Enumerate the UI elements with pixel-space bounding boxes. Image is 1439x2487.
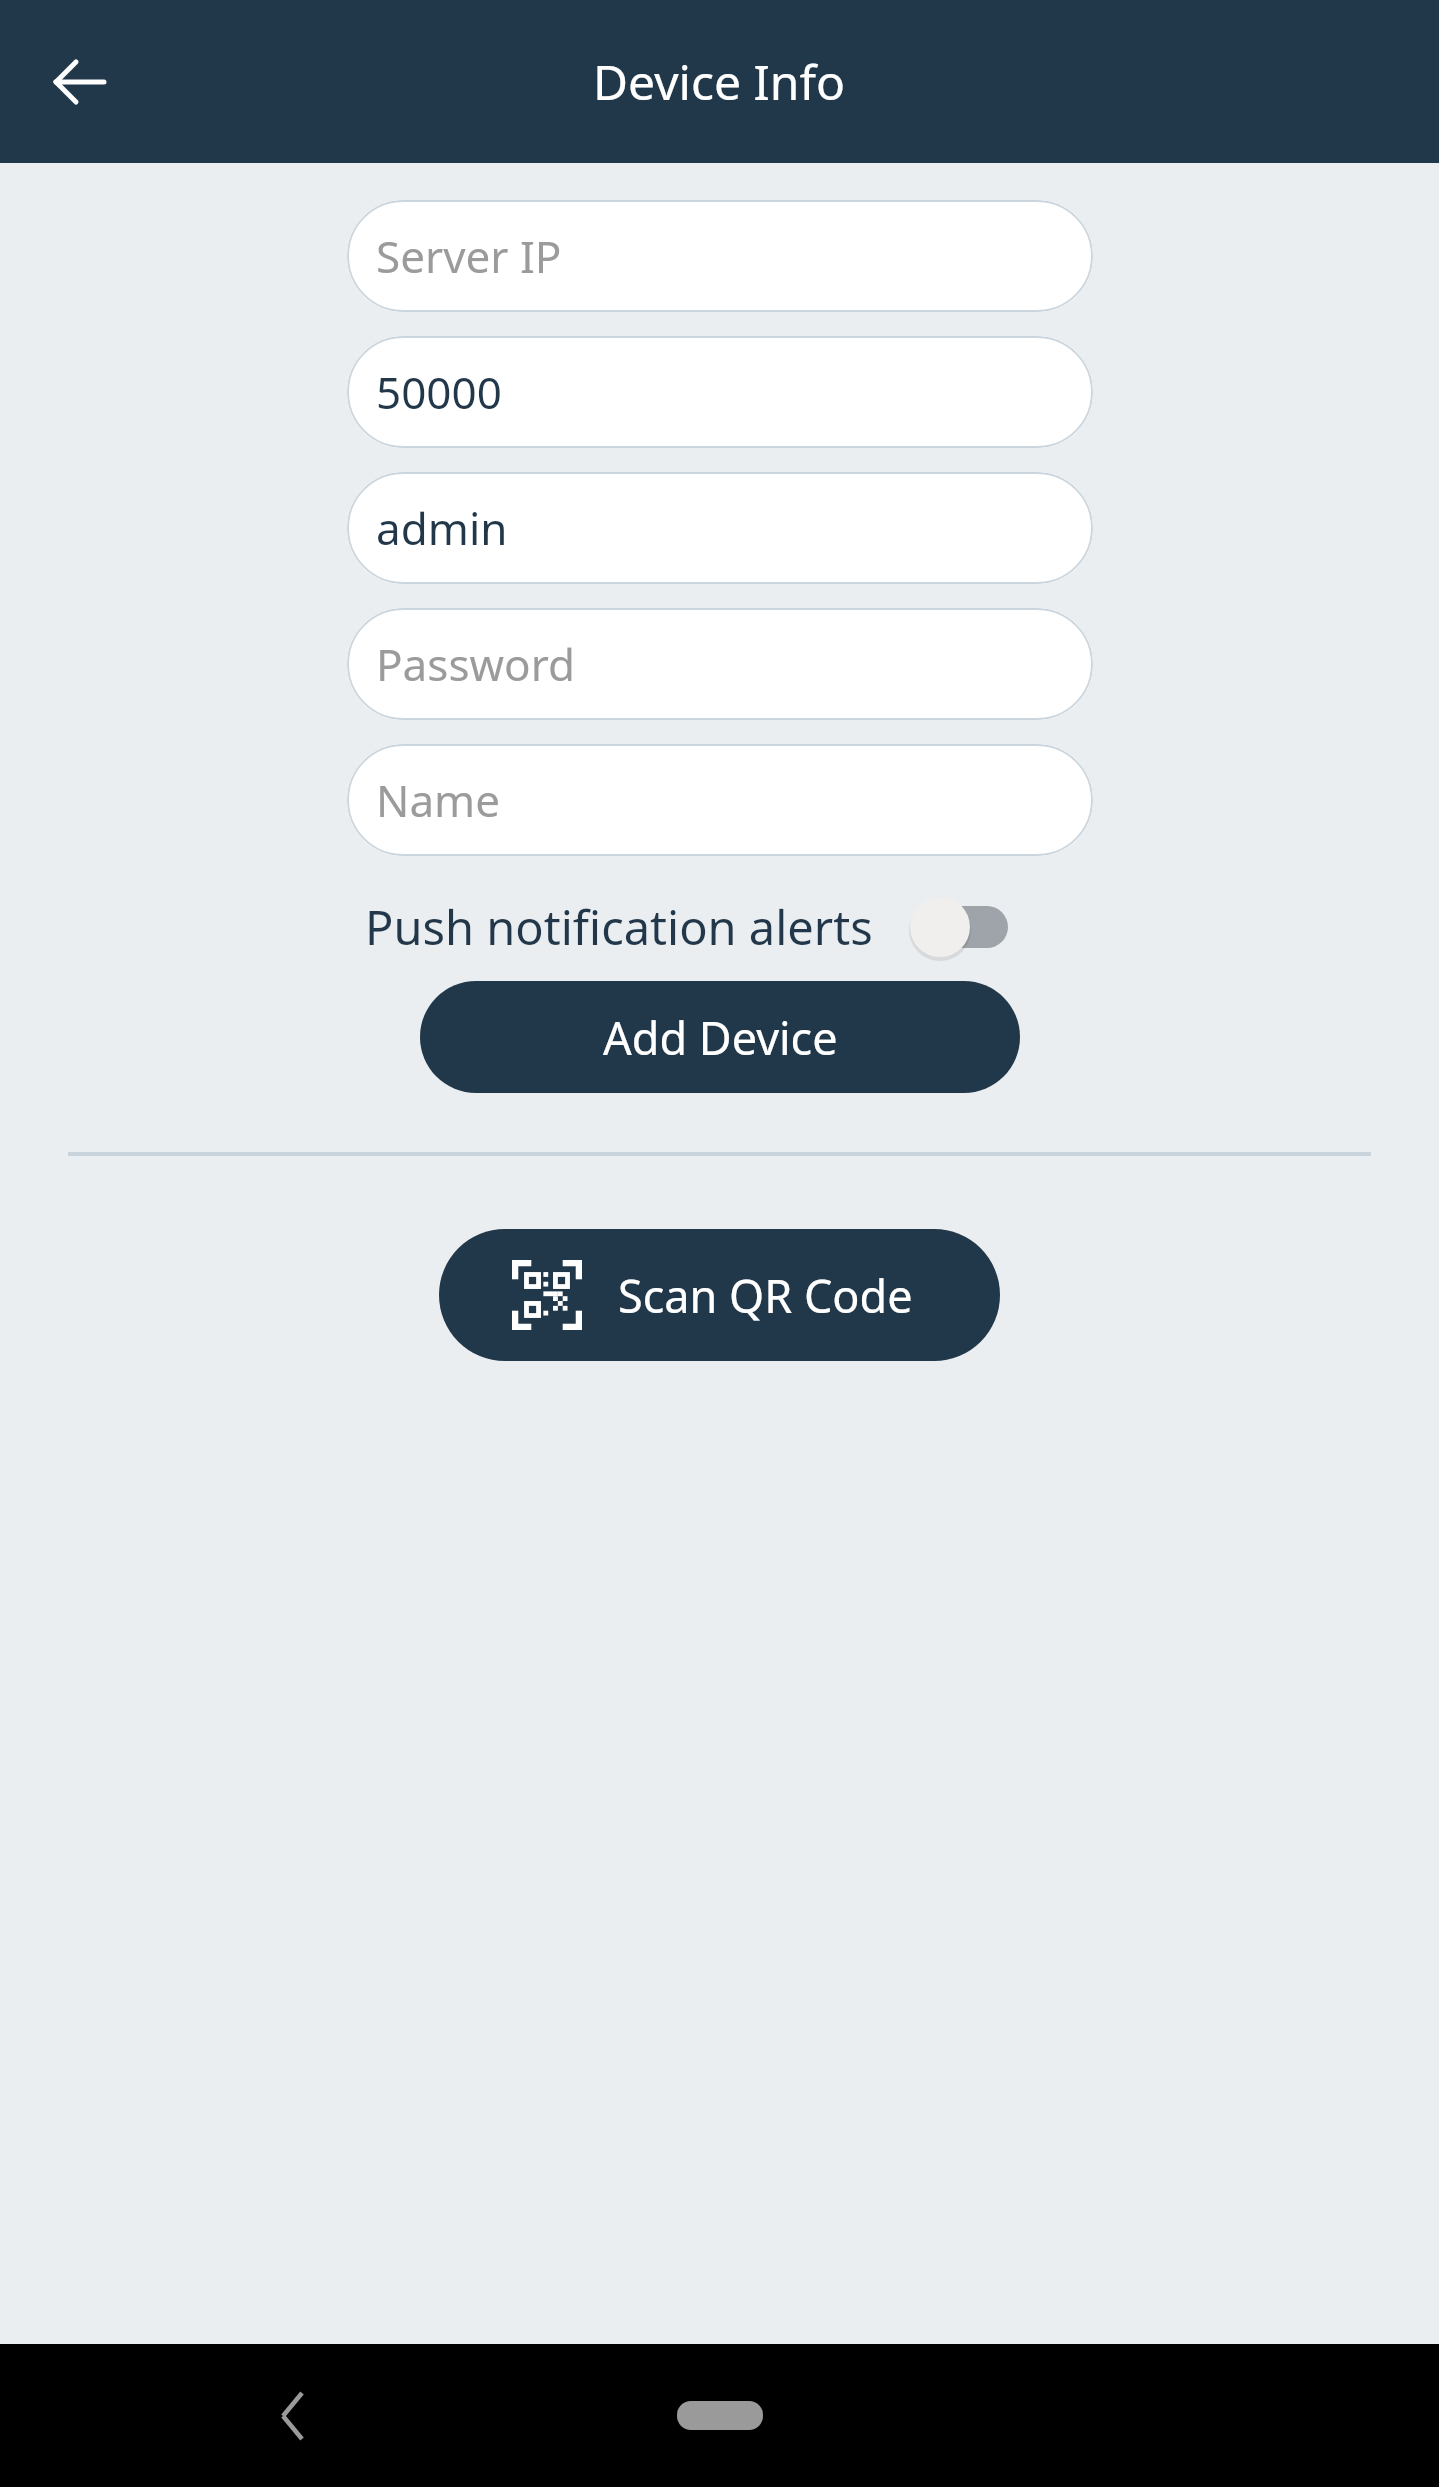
button[interactable]: Server IP — [347, 200, 1093, 312]
staticText: Password — [376, 634, 576, 694]
button[interactable]: Back — [40, 42, 120, 122]
button[interactable]: Push notification alerts toggle — [908, 894, 1008, 960]
staticText: admin — [376, 498, 508, 558]
staticText: Server IP — [376, 226, 562, 286]
button[interactable]: Add Device — [420, 981, 1020, 1093]
button[interactable]: Password — [347, 608, 1093, 720]
staticText: Device Info — [593, 49, 846, 114]
button[interactable]: Back — [248, 2372, 336, 2460]
button[interactable]: Scan QR Code — [439, 1229, 1000, 1361]
button[interactable]: 50000 — [347, 336, 1093, 448]
staticText: Push notification alerts — [365, 895, 873, 959]
staticText: Scan QR Code — [618, 1265, 913, 1326]
staticText: Add Device — [603, 1007, 838, 1068]
button[interactable]: Home — [677, 2401, 763, 2430]
button[interactable]: admin — [347, 472, 1093, 584]
button[interactable]: Name — [347, 744, 1093, 856]
staticText: Name — [376, 770, 501, 830]
staticText: 50000 — [376, 362, 502, 422]
